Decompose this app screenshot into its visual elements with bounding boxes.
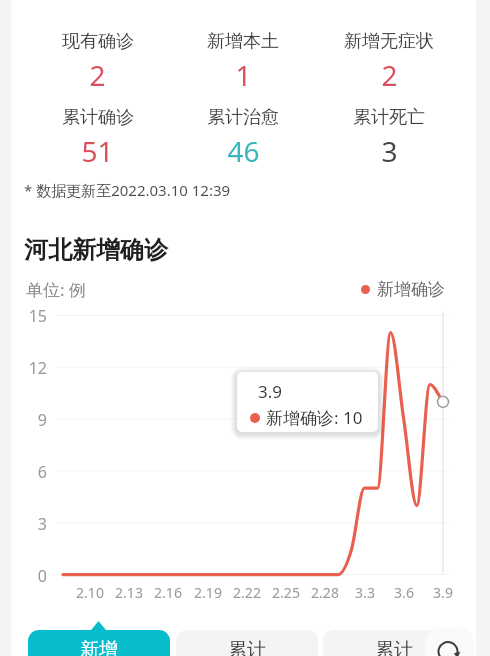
staticText: 累计死亡 <box>353 106 425 129</box>
staticText: 3 <box>7 513 47 535</box>
staticText: 现有确诊 <box>62 30 134 53</box>
staticText: 51 <box>81 132 114 170</box>
staticText: 2 <box>381 56 398 94</box>
staticText: 2.16 <box>143 583 193 602</box>
staticText: 15 <box>7 305 47 327</box>
staticText: 单位: 例 <box>26 278 86 301</box>
button[interactable]: 新增本土 <box>170 30 316 94</box>
button[interactable]: 累计 <box>323 630 465 656</box>
staticText: 12 <box>7 357 47 379</box>
staticText: 新增无症状 <box>344 30 434 53</box>
staticText: 6 <box>7 461 47 483</box>
button[interactable]: Refresh <box>425 628 474 656</box>
staticText: 新增确诊: 10 <box>266 406 363 429</box>
staticText: 46 <box>227 132 260 170</box>
button[interactable]: 累计治愈 <box>170 106 316 170</box>
staticText: 3.9 <box>258 380 283 403</box>
staticText: 河北新增确诊 <box>24 235 168 265</box>
staticText: 新增本土 <box>207 30 279 53</box>
staticText: 2.25 <box>261 583 311 602</box>
staticText: 2.13 <box>104 583 154 602</box>
button[interactable]: 累计 <box>176 630 318 656</box>
staticText: 累计治愈 <box>207 106 279 129</box>
button[interactable]: 累计死亡 <box>316 106 462 170</box>
button[interactable]: 新增 <box>28 630 170 656</box>
staticText: 新增 <box>80 638 118 656</box>
staticText: 2.22 <box>222 583 272 602</box>
staticText: 3.3 <box>340 583 390 602</box>
staticText: 2 <box>89 56 106 94</box>
staticText: 0 <box>7 565 47 587</box>
staticText: * 数据更新至2022.03.10 12:39 <box>24 180 231 200</box>
staticText: 1 <box>235 56 252 94</box>
staticText: 3 <box>381 132 398 170</box>
staticText: 累计确诊 <box>62 106 134 129</box>
staticText: 3.9 <box>418 583 468 602</box>
staticText: 3.6 <box>379 583 429 602</box>
staticText: 9 <box>7 409 47 431</box>
staticText: 累计 <box>228 638 266 656</box>
staticText: 2.10 <box>65 583 115 602</box>
button[interactable]: 累计确诊 <box>25 106 170 170</box>
staticText: 新增确诊 <box>377 279 445 300</box>
staticText: 2.19 <box>183 583 233 602</box>
staticText: 2.28 <box>300 583 350 602</box>
button[interactable]: 现有确诊 <box>25 30 170 94</box>
button[interactable]: 新增无症状 <box>316 30 462 94</box>
staticText: 累计 <box>375 638 413 656</box>
